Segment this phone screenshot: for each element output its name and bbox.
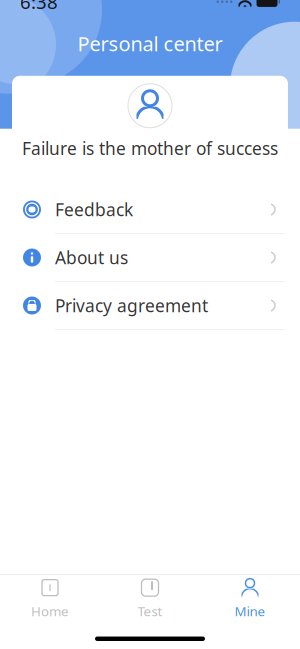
button[interactable]: Test [100, 575, 200, 623]
button[interactable]: Privacy agreement [0, 282, 300, 329]
staticText: Test [137, 602, 162, 620]
staticText: 6:38 [20, 0, 58, 14]
button[interactable]: Mine [200, 575, 300, 623]
button[interactable]: Feedback [0, 186, 300, 233]
staticText: Failure is the mother of success [22, 137, 278, 160]
staticText: Home [31, 602, 69, 620]
staticText: Personal center [77, 30, 222, 57]
staticText: Mine [234, 602, 265, 620]
button[interactable]: Home [0, 575, 100, 623]
staticText: About us [55, 246, 128, 269]
button[interactable]: About us [0, 234, 300, 281]
staticText: Privacy agreement [55, 294, 208, 317]
staticText: Feedback [55, 198, 133, 221]
